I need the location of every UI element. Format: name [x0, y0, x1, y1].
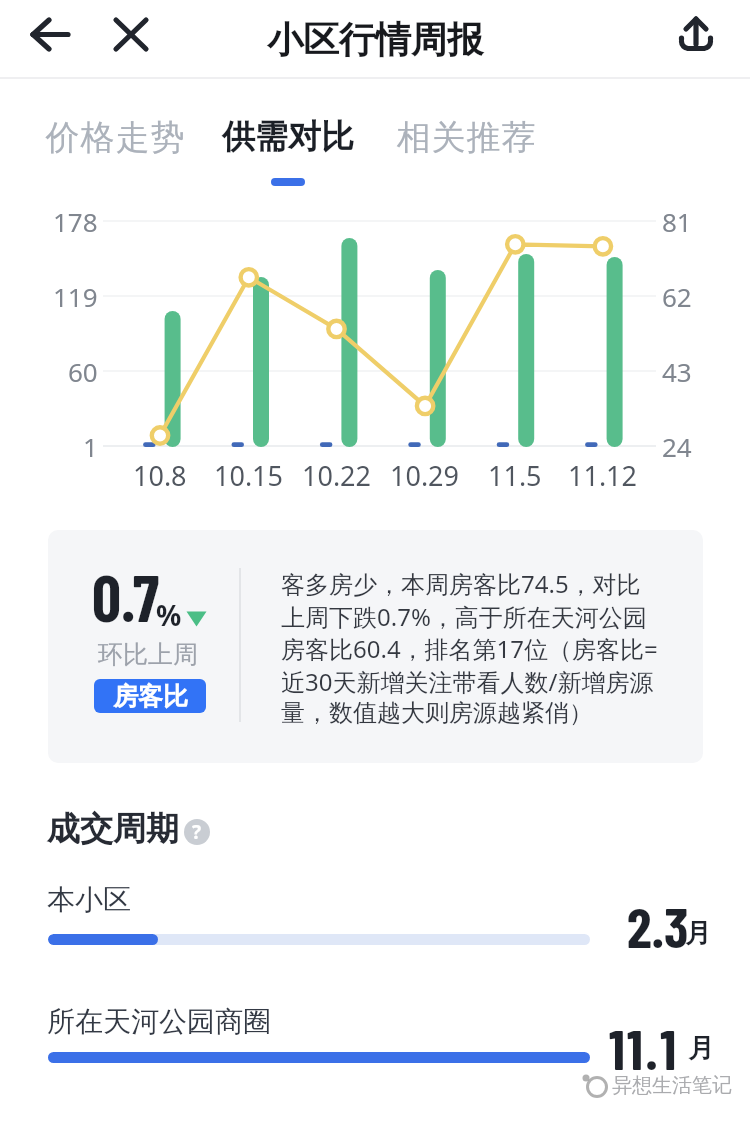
button[interactable]: [48, 934, 590, 945]
button[interactable]: 价格走势: [35, 105, 195, 169]
button[interactable]: 供需对比: [214, 105, 362, 169]
staticText: 81: [662, 204, 692, 239]
staticText: 10.29: [390, 457, 460, 494]
staticText: 60: [68, 354, 98, 389]
staticText: 客多房少，本周房客比74.5，对比: [281, 567, 641, 600]
staticText: 房客比60.4，排名第17位（房客比=: [281, 632, 658, 665]
button[interactable]: [668, 8, 724, 64]
staticText: 10.15: [214, 457, 284, 494]
staticText: 月: [685, 917, 711, 950]
staticText: 11.12: [568, 457, 638, 494]
staticText: 量，数值越大则房源越紧俏）: [281, 698, 593, 728]
button[interactable]: [104, 10, 158, 64]
staticText: 2.3: [627, 892, 689, 959]
staticText: 异想生活笔记: [612, 1073, 732, 1098]
staticText: 小区行情周报: [267, 17, 483, 62]
button[interactable]: 相关推荐: [392, 105, 540, 169]
staticText: 本小区: [47, 882, 131, 917]
button[interactable]: 房客比: [94, 679, 206, 713]
staticText: 相关推荐: [396, 116, 536, 159]
staticText: 24: [662, 429, 692, 464]
staticText: 43: [662, 354, 692, 389]
button[interactable]: ?: [184, 819, 210, 845]
staticText: 10.22: [302, 457, 372, 494]
staticText: 上周下跌0.7%，高于所在天河公园: [281, 600, 647, 633]
staticText: 房客比: [113, 681, 188, 712]
staticText: 178: [53, 204, 98, 239]
staticText: 0.7: [92, 558, 160, 635]
staticText: 月: [688, 1032, 714, 1065]
staticText: 1: [83, 429, 98, 464]
staticText: 所在天河公园商圈: [47, 1004, 271, 1039]
staticText: 11.5: [488, 457, 542, 494]
staticText: 119: [53, 279, 98, 314]
staticText: 环比上周: [98, 639, 198, 670]
button[interactable]: [20, 10, 78, 64]
staticText: 10.8: [133, 457, 187, 494]
staticText: 供需对比: [222, 116, 354, 158]
staticText: %: [156, 596, 182, 634]
staticText: 近30天新增关注带看人数/新增房源: [281, 665, 654, 698]
staticText: 价格走势: [45, 116, 185, 159]
staticText: ?: [192, 819, 202, 845]
button[interactable]: [48, 1052, 590, 1063]
staticText: 62: [662, 279, 692, 314]
staticText: 11.1: [609, 1014, 679, 1081]
staticText: 成交周期: [47, 808, 179, 850]
